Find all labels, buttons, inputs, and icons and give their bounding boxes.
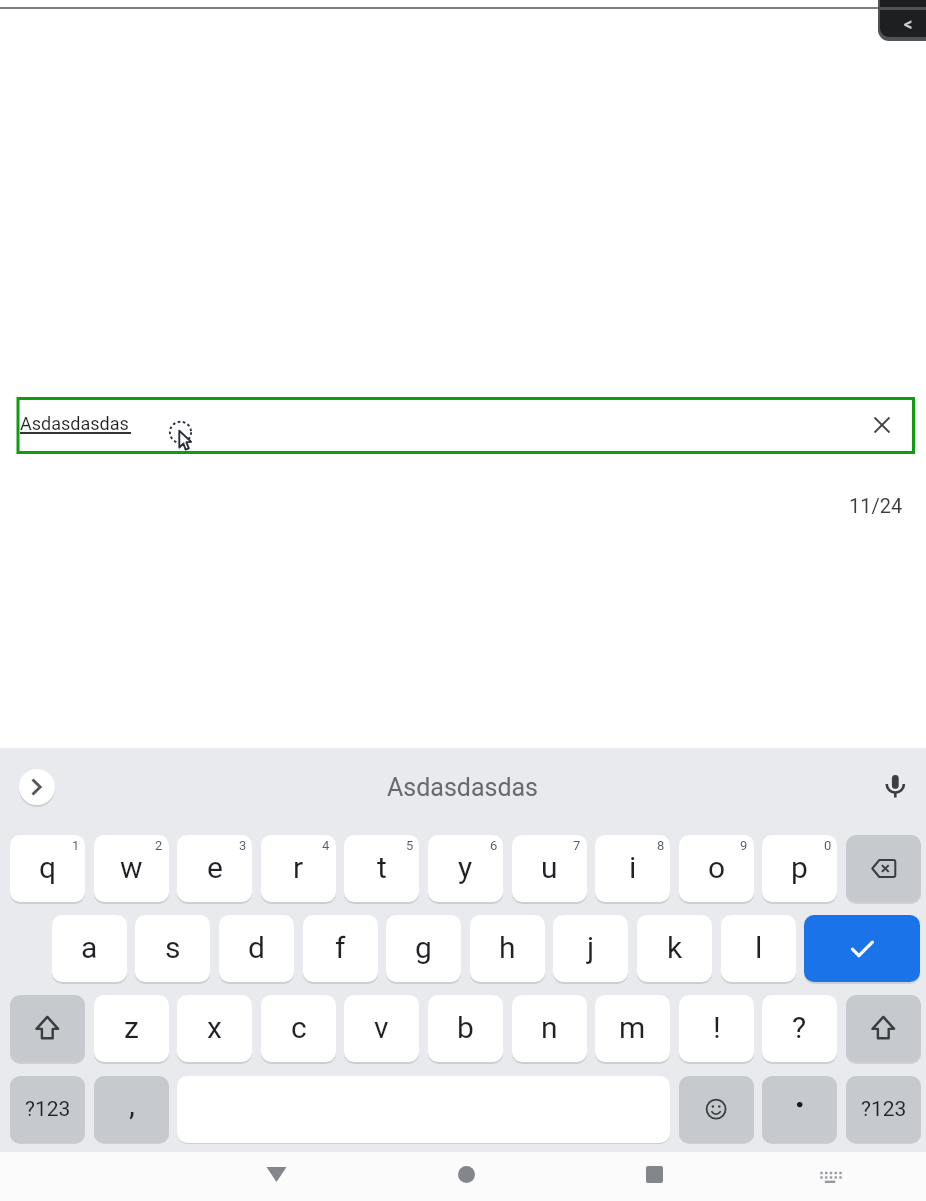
button[interactable]: a: [52, 915, 127, 982]
staticText: 7: [573, 838, 581, 853]
button[interactable]: k: [637, 915, 712, 982]
staticText: 8: [657, 838, 665, 853]
staticText: <: [904, 15, 913, 34]
staticText: h: [499, 930, 516, 965]
button[interactable]: [810, 1154, 852, 1196]
staticText: l: [755, 930, 763, 965]
staticText: p: [791, 850, 808, 885]
staticText: t: [377, 850, 387, 885]
staticText: q: [39, 850, 57, 885]
button[interactable]: [880, 0, 926, 37]
staticText: ?123: [25, 1097, 71, 1122]
button[interactable]: [634, 1154, 676, 1196]
button[interactable]: [10, 995, 85, 1062]
button[interactable]: q: [10, 835, 85, 902]
button[interactable]: [679, 1076, 754, 1143]
staticText: f: [335, 930, 346, 965]
staticText: s: [165, 930, 181, 965]
staticText: Asdasdasdas: [20, 413, 129, 434]
staticText: w: [120, 850, 143, 885]
staticText: ,: [129, 1087, 135, 1122]
button[interactable]: p: [762, 835, 837, 902]
button[interactable]: ,: [94, 1076, 169, 1143]
staticText: ?: [792, 1010, 807, 1045]
button[interactable]: [846, 995, 921, 1062]
button[interactable]: m: [595, 995, 670, 1062]
staticText: 1: [72, 838, 80, 853]
button[interactable]: n: [512, 995, 587, 1062]
staticText: 0: [824, 838, 832, 853]
button[interactable]: g: [386, 915, 461, 982]
button[interactable]: s: [135, 915, 210, 982]
button[interactable]: u: [512, 835, 587, 902]
staticText: v: [374, 1010, 389, 1045]
button[interactable]: r: [261, 835, 336, 902]
button[interactable]: e: [177, 835, 252, 902]
button[interactable]: [19, 769, 55, 805]
button[interactable]: x: [177, 995, 252, 1062]
staticText: 9: [740, 838, 748, 853]
button[interactable]: t: [344, 835, 419, 902]
staticText: i: [629, 850, 637, 885]
staticText: d: [248, 930, 265, 965]
button[interactable]: f: [303, 915, 378, 982]
button[interactable]: ?123: [10, 1076, 85, 1143]
staticText: k: [667, 930, 683, 965]
staticText: 11/24: [849, 494, 903, 517]
button[interactable]: c: [261, 995, 336, 1062]
staticText: x: [207, 1010, 222, 1045]
staticText: z: [124, 1010, 139, 1045]
button[interactable]: [256, 1154, 298, 1196]
button[interactable]: y: [428, 835, 503, 902]
button[interactable]: v: [344, 995, 419, 1062]
staticText: o: [708, 850, 726, 885]
staticText: c: [291, 1010, 307, 1045]
staticText: b: [457, 1010, 474, 1045]
button[interactable]: h: [470, 915, 545, 982]
staticText: r: [293, 850, 304, 885]
staticText: 2: [155, 838, 163, 853]
button[interactable]: j: [553, 915, 628, 982]
staticText: 6: [490, 838, 498, 853]
button[interactable]: w: [94, 835, 169, 902]
button[interactable]: b: [428, 995, 503, 1062]
button[interactable]: [866, 409, 898, 441]
button[interactable]: ?123: [846, 1076, 921, 1143]
staticText: n: [541, 1010, 558, 1045]
button[interactable]: [804, 915, 920, 982]
button[interactable]: !: [679, 995, 754, 1062]
button[interactable]: [446, 1154, 488, 1196]
button[interactable]: [762, 1076, 837, 1143]
staticText: y: [458, 850, 473, 885]
staticText: 3: [239, 838, 247, 853]
button[interactable]: [880, 770, 912, 802]
button[interactable]: o: [679, 835, 754, 902]
button[interactable]: z: [94, 995, 169, 1062]
staticText: g: [415, 930, 432, 965]
button[interactable]: l: [721, 915, 796, 982]
button[interactable]: i: [595, 835, 670, 902]
button[interactable]: d: [219, 915, 294, 982]
staticText: 4: [322, 838, 330, 853]
staticText: m: [619, 1010, 646, 1045]
button[interactable]: [846, 835, 921, 902]
button[interactable]: ?: [762, 995, 837, 1062]
staticText: a: [81, 930, 98, 965]
staticText: ?123: [861, 1097, 907, 1122]
staticText: Asdasdasdas: [387, 773, 539, 802]
staticText: j: [587, 930, 595, 965]
staticText: 5: [406, 838, 414, 853]
staticText: !: [713, 1010, 721, 1045]
staticText: e: [207, 850, 223, 885]
staticText: u: [541, 850, 558, 885]
